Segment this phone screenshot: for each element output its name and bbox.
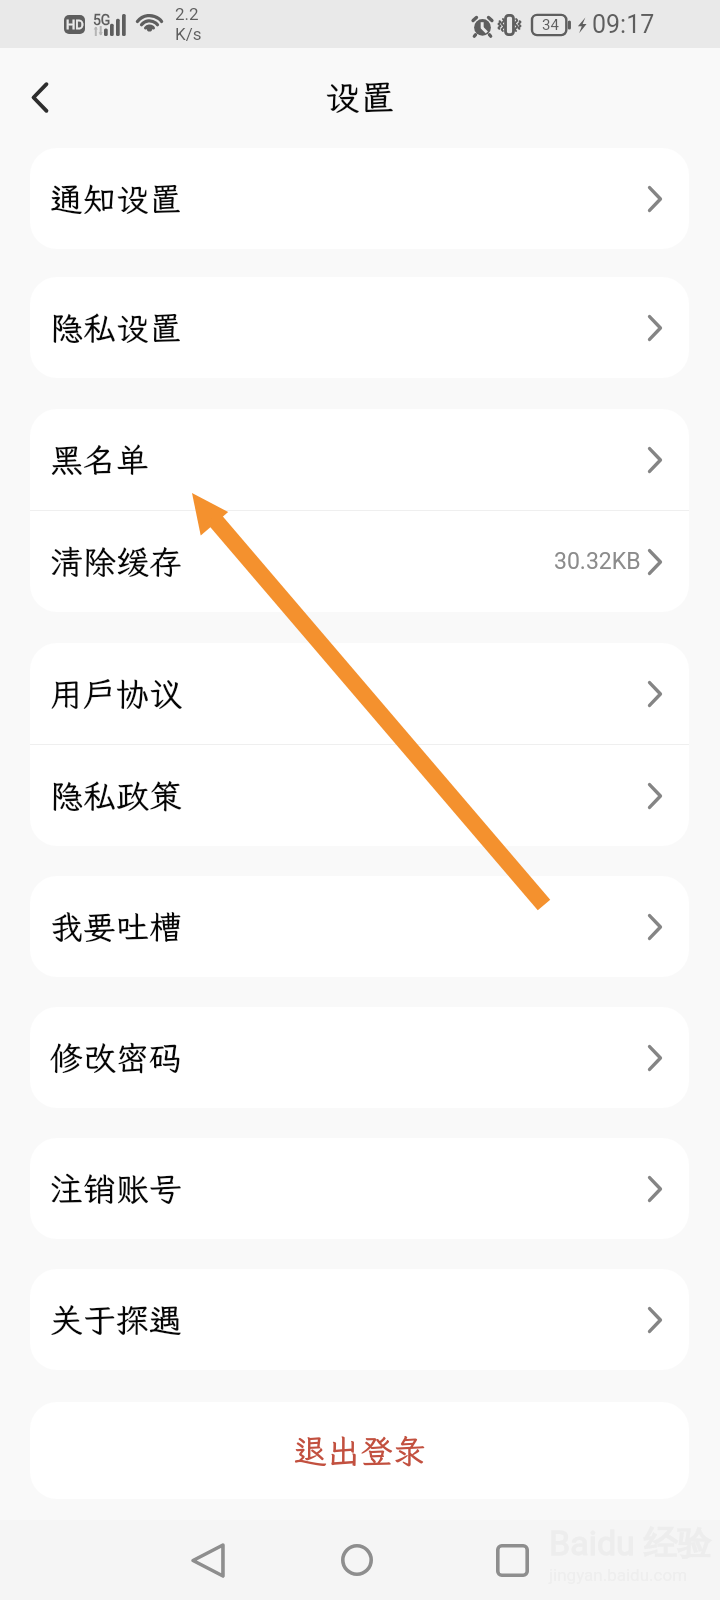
staticText: 09:17 bbox=[592, 10, 655, 39]
button[interactable]: Back bbox=[166, 1520, 250, 1600]
staticText: Baidu 经验 bbox=[549, 1522, 712, 1565]
staticText: 2.2 bbox=[175, 4, 199, 24]
staticText: 隐私政策 bbox=[50, 774, 182, 817]
staticText: 用户协议 bbox=[50, 672, 182, 715]
staticText: 清除缓存 bbox=[50, 540, 182, 583]
staticText: 退出登录 bbox=[294, 1429, 426, 1472]
staticText: 通知设置 bbox=[50, 177, 182, 220]
button[interactable]: 关于探遇 bbox=[30, 1269, 689, 1370]
button[interactable]: 清除缓存 bbox=[30, 511, 689, 612]
button[interactable]: Recents bbox=[470, 1520, 554, 1600]
button[interactable]: 隐私设置 bbox=[30, 277, 689, 378]
button[interactable]: 退出登录 bbox=[30, 1402, 689, 1499]
staticText: 注销账号 bbox=[50, 1167, 182, 1210]
staticText: 我要吐槽 bbox=[50, 905, 182, 948]
staticText: K/s bbox=[175, 24, 202, 44]
button[interactable]: 用户协议 bbox=[30, 643, 689, 744]
staticText: 隐私设置 bbox=[50, 306, 182, 349]
staticText: 5G bbox=[93, 12, 111, 28]
button[interactable]: Back bbox=[12, 69, 68, 125]
button[interactable]: 隐私政策 bbox=[30, 745, 689, 846]
button[interactable]: 我要吐槽 bbox=[30, 876, 689, 977]
staticText: HD bbox=[66, 17, 84, 32]
button[interactable]: Home bbox=[315, 1520, 399, 1600]
button[interactable]: 注销账号 bbox=[30, 1138, 689, 1239]
staticText: 黑名单 bbox=[50, 438, 149, 481]
staticText: 30.32KB bbox=[554, 548, 641, 575]
button[interactable]: 黑名单 bbox=[30, 409, 689, 510]
button[interactable]: 修改密码 bbox=[30, 1007, 689, 1108]
staticText: 34 bbox=[542, 16, 559, 34]
staticText: 修改密码 bbox=[50, 1036, 182, 1079]
staticText: 关于探遇 bbox=[50, 1298, 182, 1341]
staticText: 设置 bbox=[325, 74, 396, 120]
button[interactable]: 通知设置 bbox=[30, 148, 689, 249]
